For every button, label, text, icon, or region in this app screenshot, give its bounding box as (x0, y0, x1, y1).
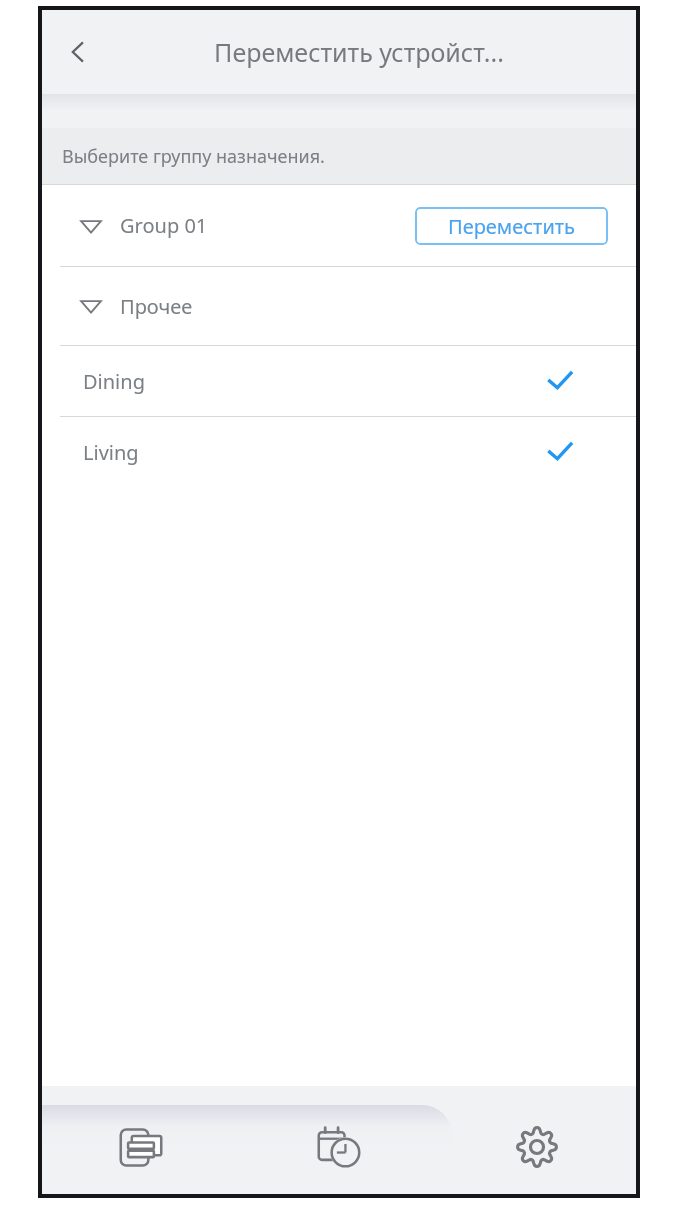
button[interactable]: Settings (438, 1086, 636, 1194)
button[interactable]: Back (50, 24, 106, 80)
staticText: Переместить (448, 213, 576, 240)
staticText: Прочее (120, 293, 193, 320)
staticText: Group 01 (120, 212, 208, 239)
staticText: Выберите группу назначения. (62, 144, 325, 169)
button[interactable]: Прочее (42, 267, 636, 345)
button[interactable]: Group 01 (42, 185, 636, 266)
staticText: Dining (83, 368, 145, 395)
button[interactable]: Living (42, 417, 636, 487)
button[interactable]: Dining (42, 346, 636, 416)
staticText: Living (83, 439, 139, 466)
button[interactable]: Переместить (415, 207, 608, 245)
button[interactable]: Print (42, 1086, 240, 1194)
staticText: Переместить устройст... (214, 35, 504, 69)
button[interactable]: Schedule (240, 1086, 438, 1194)
